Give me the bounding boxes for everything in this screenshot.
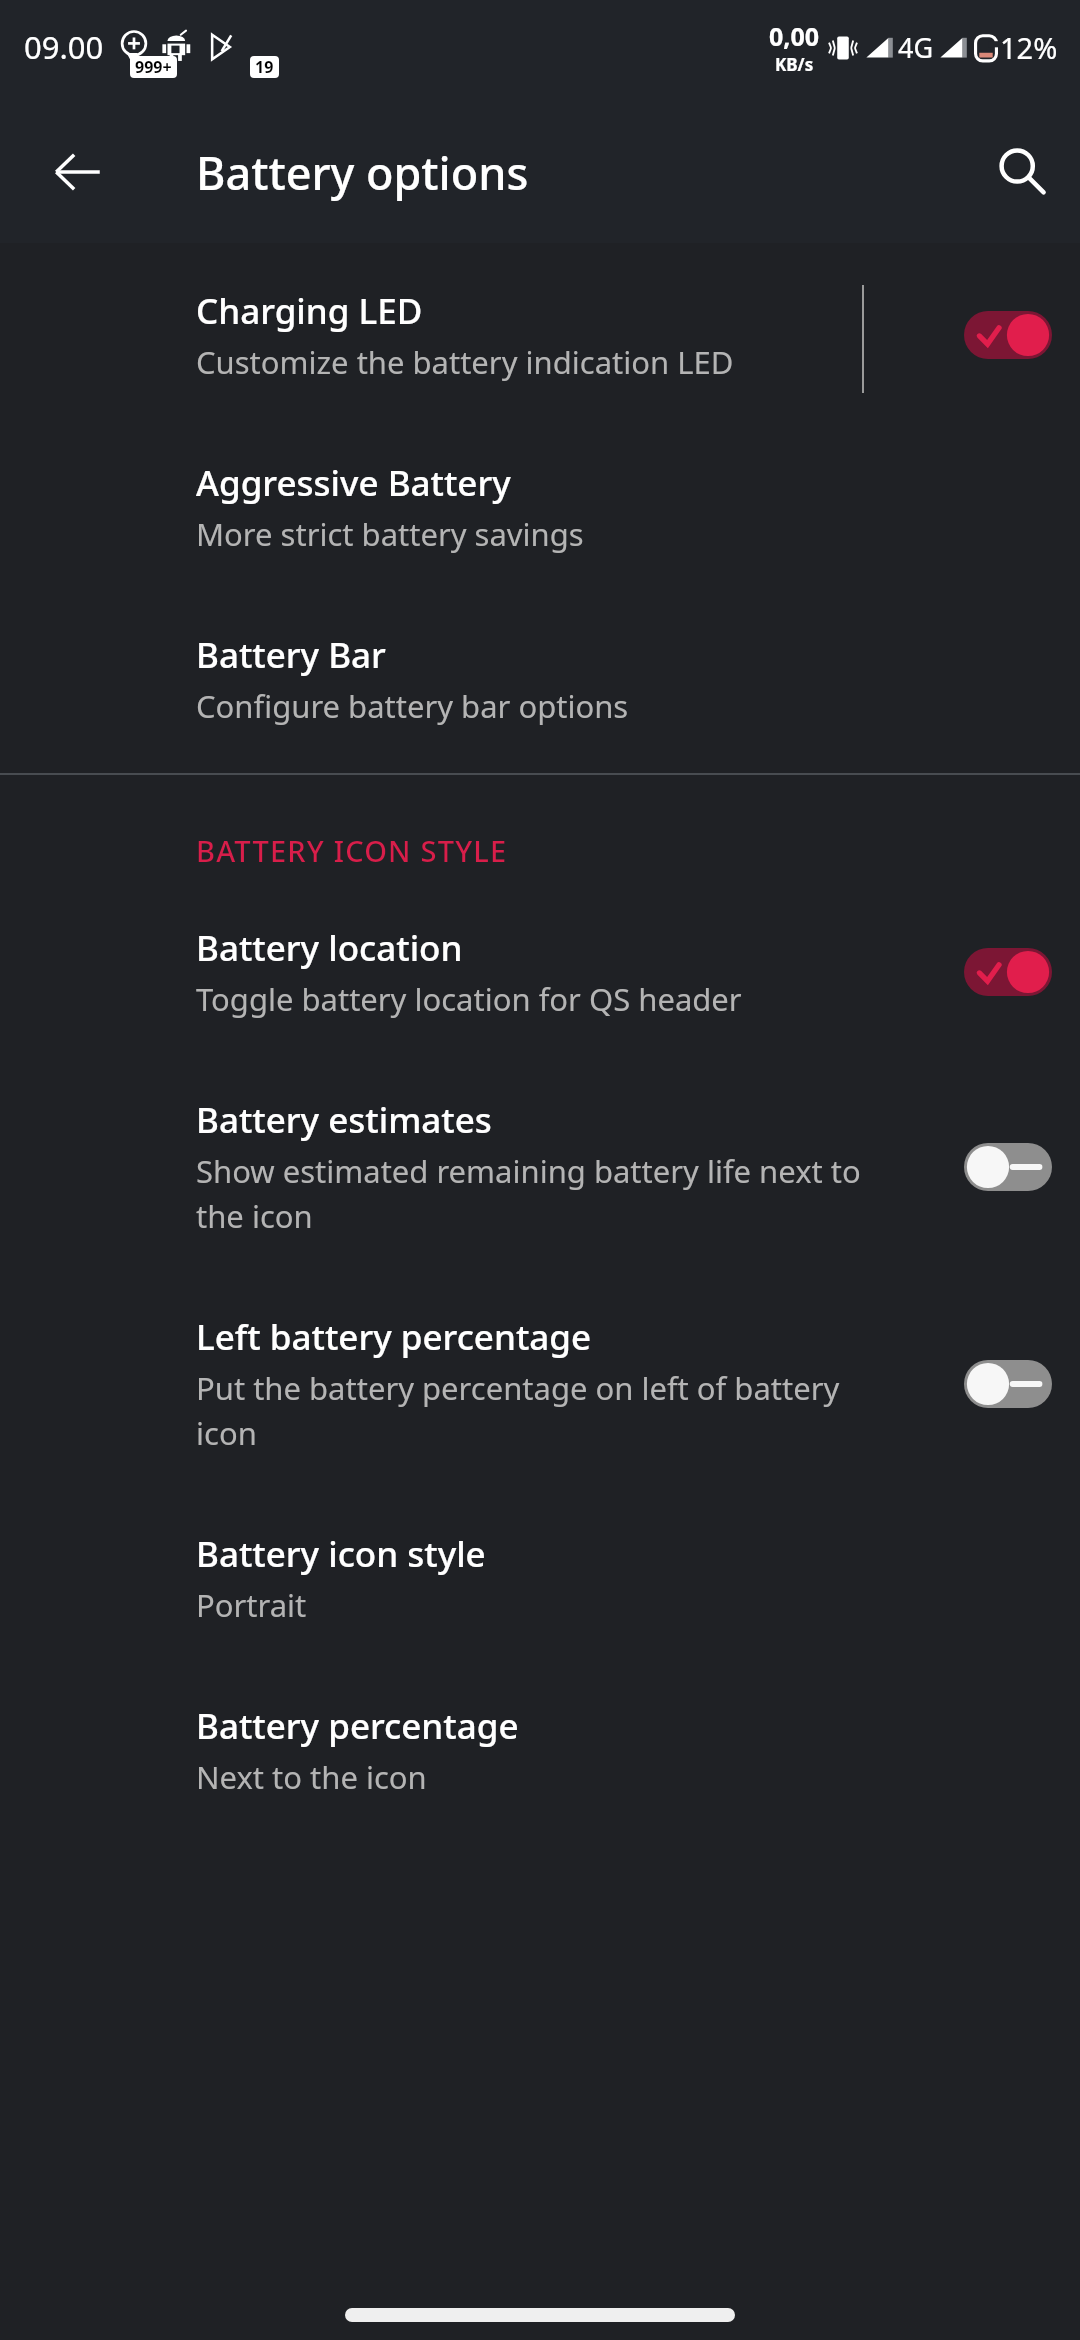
staticText: 0,00 <box>769 19 820 53</box>
button[interactable]: Toggle on <box>964 948 1052 996</box>
button[interactable]: Battery Bar <box>0 587 1080 773</box>
staticText: More strict battery savings <box>196 513 584 555</box>
staticText: Put the battery percentage on left of ba… <box>196 1367 908 1454</box>
staticText: 999+ <box>135 56 172 78</box>
button[interactable]: Aggressive Battery <box>0 415 1080 587</box>
staticText: BATTERY ICON STYLE <box>196 831 508 870</box>
staticText: 19 <box>255 56 274 78</box>
button[interactable]: Left battery percentage <box>0 1269 1080 1486</box>
button[interactable]: Toggle on <box>964 311 1052 359</box>
staticText: 12% <box>1000 28 1058 67</box>
button[interactable]: Toggle off <box>964 1143 1052 1191</box>
staticText: 4G <box>898 29 934 66</box>
staticText: Customize the battery indication LED <box>196 341 734 383</box>
staticText: 09.00 <box>24 26 104 68</box>
staticText: KB/s <box>775 53 814 76</box>
staticText: Configure battery bar options <box>196 685 629 727</box>
staticText: Battery estimates <box>196 1096 492 1144</box>
staticText: Charging LED <box>196 287 423 335</box>
staticText: Show estimated remaining battery life ne… <box>196 1150 908 1237</box>
staticText: Battery Bar <box>196 631 386 679</box>
button[interactable]: Search <box>992 142 1052 202</box>
staticText: Portrait <box>196 1584 307 1626</box>
button[interactable]: Back <box>46 140 110 204</box>
button[interactable]: Battery location <box>0 910 1080 1052</box>
staticText: Battery percentage <box>196 1702 519 1750</box>
staticText: Next to the icon <box>196 1756 427 1798</box>
button[interactable]: Battery estimates <box>0 1052 1080 1269</box>
button[interactable]: Battery percentage <box>0 1658 1080 1830</box>
button[interactable]: Battery icon style <box>0 1486 1080 1658</box>
staticText: Left battery percentage <box>196 1313 592 1361</box>
staticText: Battery icon style <box>196 1530 486 1578</box>
staticText: Aggressive Battery <box>196 459 511 507</box>
staticText: Battery options <box>196 142 529 203</box>
staticText: Toggle battery location for QS header <box>196 978 742 1020</box>
button[interactable]: Charging LED <box>0 243 1080 415</box>
button[interactable]: Toggle off <box>964 1360 1052 1408</box>
staticText: Battery location <box>196 924 463 972</box>
